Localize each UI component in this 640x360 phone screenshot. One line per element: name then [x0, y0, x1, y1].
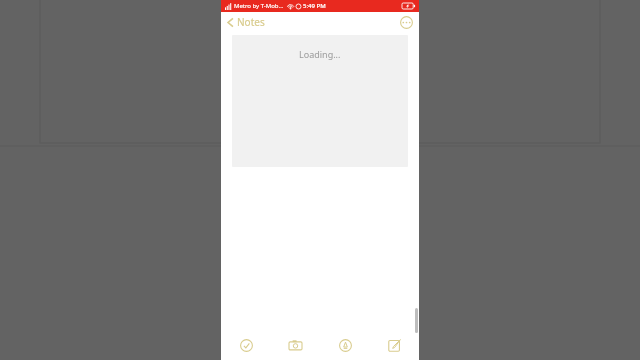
button[interactable]: Checklist [234, 333, 258, 357]
button[interactable]: Camera [283, 333, 307, 357]
button[interactable]: Markup [333, 333, 357, 357]
button[interactable]: More options [400, 16, 413, 29]
staticText: Metro by T-Mob... [234, 2, 284, 10]
button[interactable]: Compose [382, 333, 406, 357]
staticText: Notes [237, 15, 265, 29]
button[interactable]: Notes [225, 13, 267, 31]
staticText: 5:49 PM [303, 2, 326, 10]
staticText: Loading... [299, 48, 341, 60]
